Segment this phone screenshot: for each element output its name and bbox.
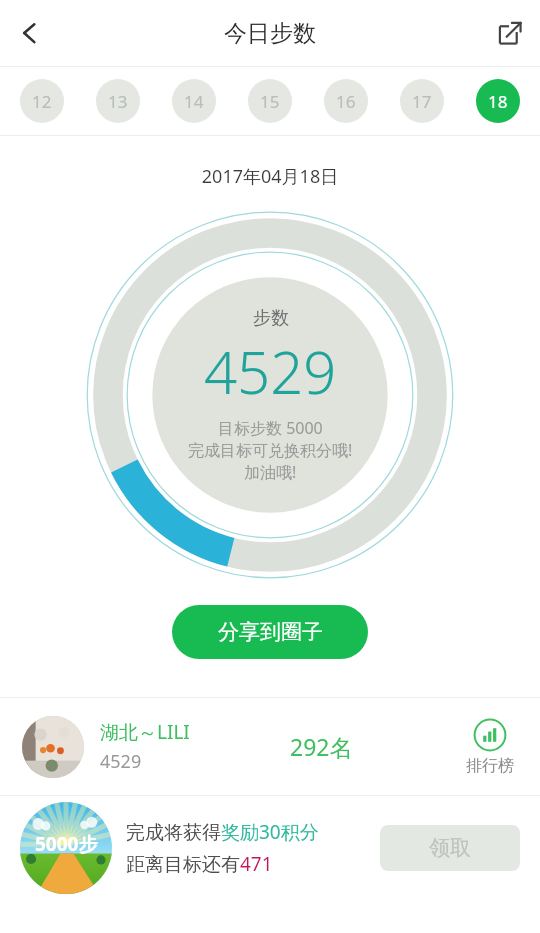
button[interactable]: 湖北～LILI [0, 698, 540, 795]
staticText: 2017年04月18日 [0, 164, 540, 189]
button[interactable]: 18 [476, 79, 520, 123]
button[interactable]: 排行榜 [462, 718, 518, 776]
button[interactable]: 14 [172, 79, 216, 123]
staticText: 完成将获得奖励30积分 [126, 819, 319, 845]
button[interactable]: 17 [400, 79, 444, 123]
staticText: 14 [184, 90, 204, 113]
button[interactable]: 13 [96, 79, 140, 123]
staticText: 今日步数 [224, 19, 316, 48]
staticText: 湖北～LILI [100, 719, 190, 745]
staticText: 排行榜 [466, 756, 514, 776]
staticText: 18 [488, 90, 508, 113]
button[interactable]: 15 [248, 79, 292, 123]
staticText: 距离目标还有471 [126, 851, 273, 877]
staticText: 步数 [253, 307, 289, 330]
button[interactable]: 分享到圈子 [172, 605, 368, 659]
button[interactable]: 领取 [380, 825, 520, 871]
button[interactable]: 12 [20, 79, 64, 123]
staticText: 16 [336, 90, 356, 113]
staticText: 加油哦! [244, 461, 297, 483]
staticText: 4529 [204, 332, 337, 411]
staticText: 15 [260, 90, 280, 113]
button[interactable]: Back [0, 3, 60, 63]
staticText: 领取 [429, 835, 471, 861]
staticText: 13 [108, 90, 128, 113]
staticText: 目标步数 5000 [218, 417, 323, 439]
staticText: 5000步 [35, 831, 98, 857]
staticText: 17 [412, 90, 432, 113]
staticText: 12 [32, 90, 52, 113]
staticText: 完成目标可兑换积分哦! [188, 439, 353, 461]
staticText: 292名 [290, 731, 353, 762]
button[interactable]: 16 [324, 79, 368, 123]
staticText: 分享到圈子 [218, 619, 323, 645]
staticText: 4529 [100, 749, 142, 774]
button[interactable]: Share [480, 3, 540, 63]
